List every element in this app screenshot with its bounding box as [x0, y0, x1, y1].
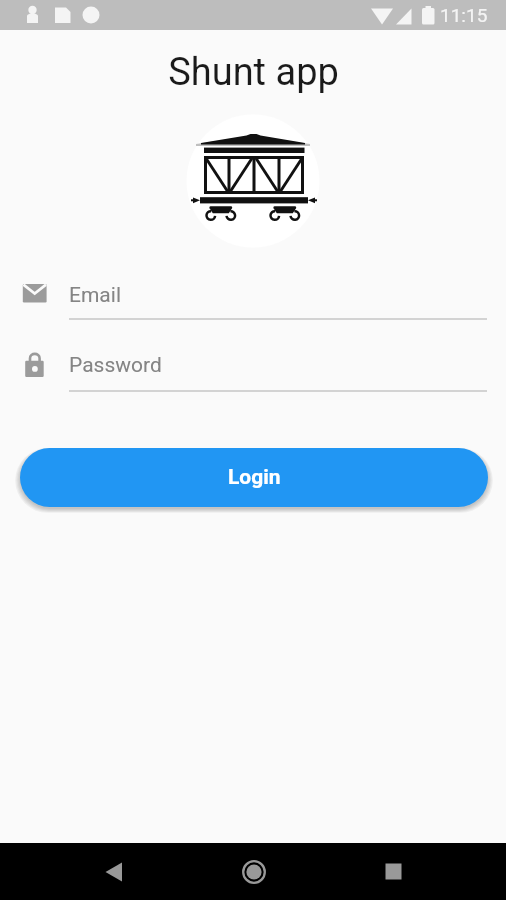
staticText: Password [69, 353, 162, 378]
button[interactable]: Recent apps [365, 843, 422, 900]
button[interactable]: Login [20, 448, 488, 507]
staticText: Shunt app [168, 50, 339, 95]
button[interactable]: Back [85, 843, 142, 900]
button[interactable]: Home [225, 843, 282, 900]
staticText: Login [228, 465, 281, 490]
staticText: 11:15 [440, 4, 488, 26]
staticText: Email [69, 283, 121, 308]
